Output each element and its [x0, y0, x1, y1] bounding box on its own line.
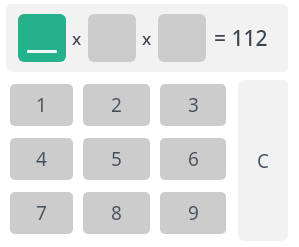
- staticText: 3: [188, 92, 199, 118]
- button[interactable]: 3: [160, 84, 226, 126]
- button[interactable]: 4: [10, 138, 73, 180]
- staticText: = 112: [214, 24, 268, 53]
- staticText: 2: [111, 92, 122, 118]
- staticText: C: [257, 148, 270, 174]
- staticText: 5: [111, 146, 122, 172]
- button[interactable]: Third factor: [158, 14, 206, 62]
- button[interactable]: 8: [83, 192, 150, 234]
- button[interactable]: 6: [160, 138, 226, 180]
- staticText: 6: [188, 146, 199, 172]
- staticText: 9: [188, 200, 199, 226]
- button[interactable]: 1: [10, 84, 73, 126]
- button[interactable]: 5: [83, 138, 150, 180]
- button[interactable]: 2: [83, 84, 150, 126]
- button[interactable]: Second factor: [88, 14, 136, 62]
- staticText: 7: [36, 200, 47, 226]
- staticText: 4: [36, 146, 47, 172]
- staticText: x: [72, 27, 82, 50]
- button[interactable]: C: [238, 80, 288, 241]
- button[interactable]: 9: [160, 192, 226, 234]
- staticText: 1: [36, 92, 47, 118]
- button[interactable]: 7: [10, 192, 73, 234]
- staticText: 8: [111, 200, 122, 226]
- staticText: x: [142, 27, 152, 50]
- button[interactable]: First factor, selected: [18, 14, 66, 62]
